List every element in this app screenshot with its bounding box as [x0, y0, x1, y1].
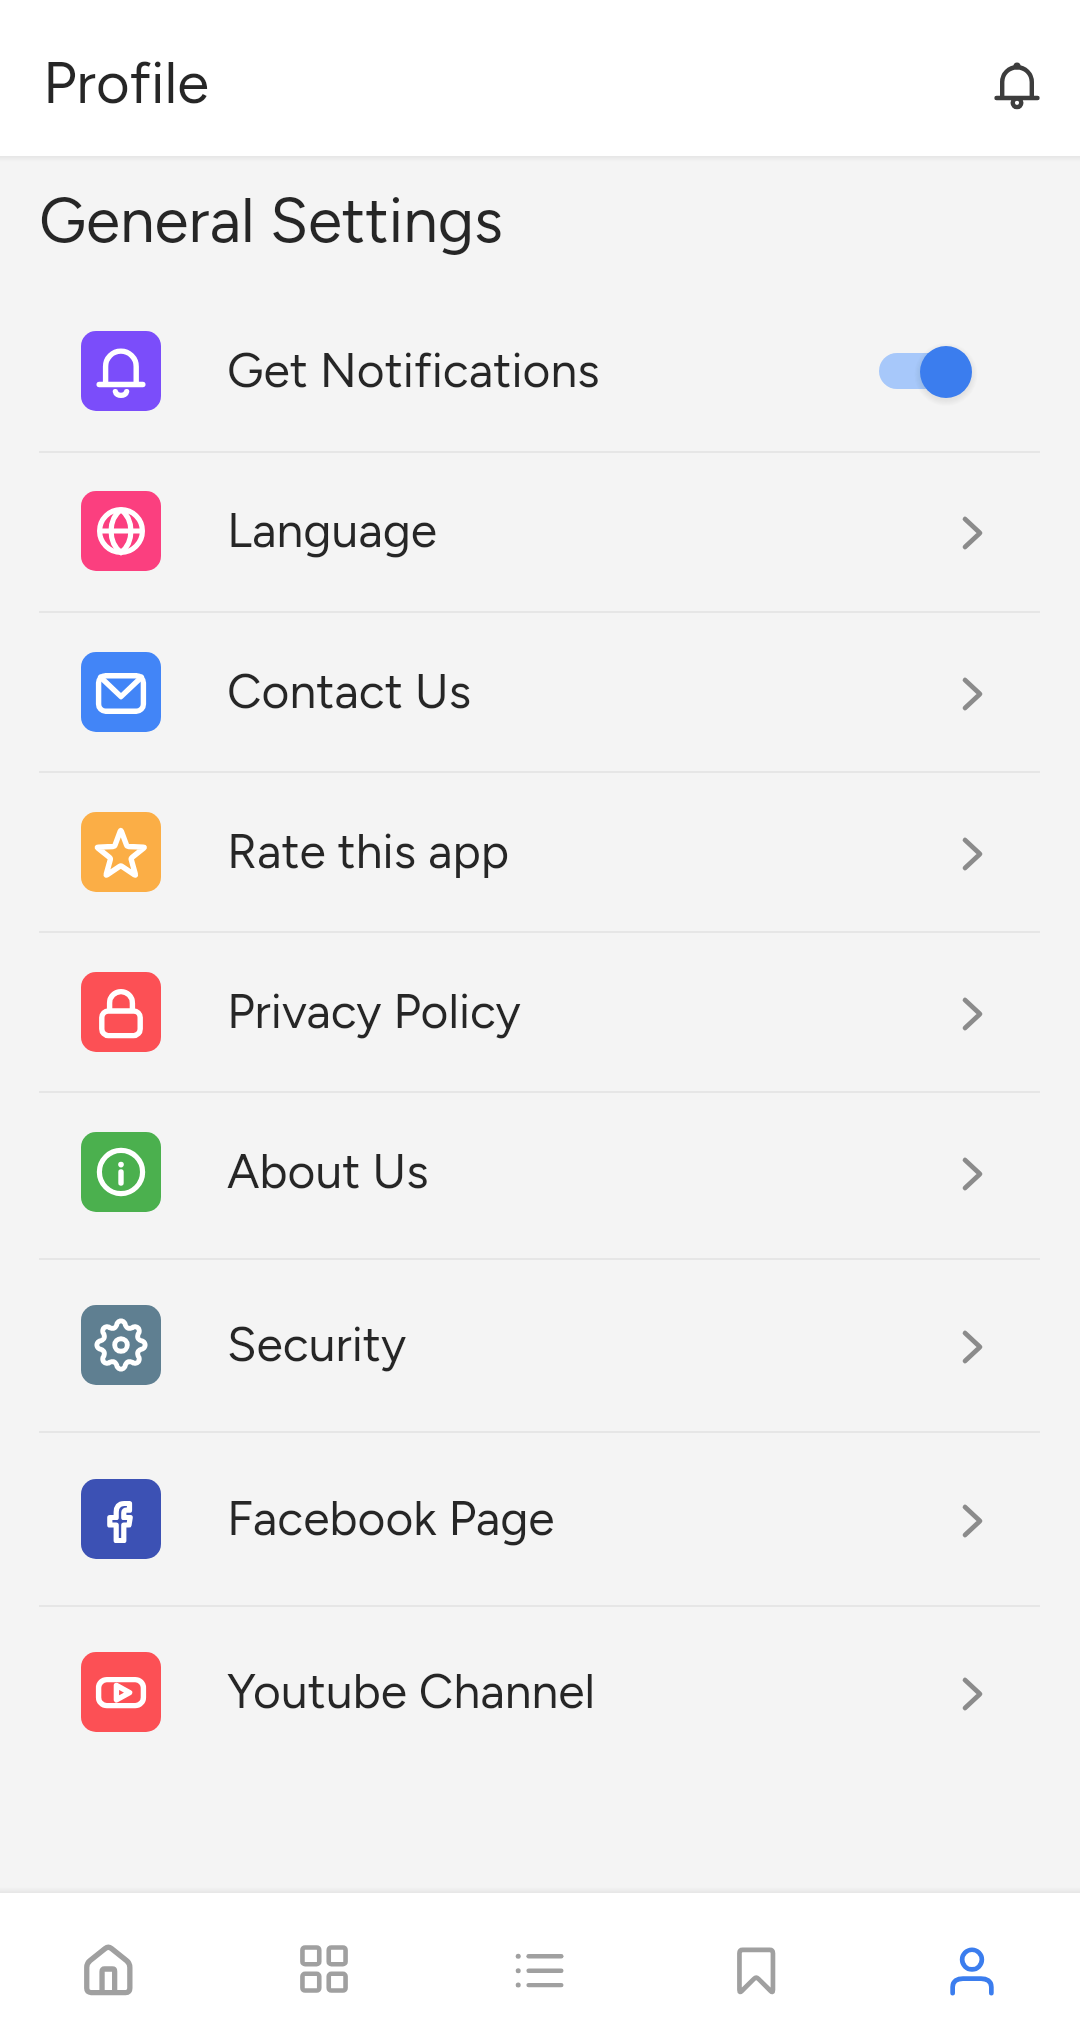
button[interactable]: Contact Us [0, 612, 1080, 772]
button[interactable]: Security [0, 1265, 1080, 1425]
staticText: Contact Us [227, 662, 472, 720]
button[interactable]: Profile [864, 1893, 1080, 2041]
button[interactable]: Privacy Policy [0, 932, 1080, 1092]
button[interactable]: List [432, 1893, 648, 2041]
button[interactable]: Home [0, 1893, 216, 2041]
staticText: Youtube Channel [227, 1662, 596, 1720]
button[interactable]: Categories [216, 1893, 432, 2041]
staticText: Get Notifications [227, 341, 600, 399]
staticText: Language [227, 501, 438, 559]
staticText: About Us [227, 1142, 429, 1200]
button[interactable]: About Us [0, 1092, 1080, 1252]
staticText: General Settings [39, 183, 504, 257]
staticText: Facebook Page [227, 1489, 555, 1547]
button[interactable]: Bookmarks [648, 1893, 864, 2041]
button[interactable]: Facebook Page [0, 1439, 1080, 1599]
button[interactable]: Get Notifications [0, 291, 1080, 451]
staticText: Privacy Policy [227, 982, 521, 1040]
button[interactable]: Rate this app [0, 772, 1080, 932]
button[interactable]: Youtube Channel [0, 1612, 1080, 1772]
button[interactable]: Language [0, 451, 1080, 611]
button[interactable]: Notifications [989, 57, 1045, 113]
staticText: Profile [43, 48, 209, 118]
staticText: Rate this app [227, 822, 510, 880]
staticText: Security [227, 1315, 407, 1373]
